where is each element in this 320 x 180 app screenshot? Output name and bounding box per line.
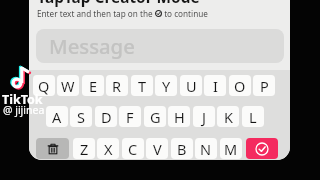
button[interactable]: L xyxy=(242,106,264,127)
staticText: E xyxy=(89,76,98,96)
staticText: L xyxy=(249,107,257,127)
staticText: H xyxy=(174,107,185,127)
staticText: Y xyxy=(162,76,171,96)
staticText: Enter text and then tap on the xyxy=(37,8,155,19)
button[interactable]: A xyxy=(46,106,68,127)
staticText: I xyxy=(213,76,218,96)
staticText: J xyxy=(202,107,206,127)
button[interactable]: V xyxy=(146,138,168,159)
staticText: W xyxy=(61,76,75,96)
button[interactable]: Q xyxy=(33,75,55,96)
button[interactable]: K xyxy=(217,106,239,127)
staticText: Z xyxy=(80,139,89,159)
button[interactable]: G xyxy=(144,106,166,127)
button[interactable]: C xyxy=(122,138,144,159)
staticText: K xyxy=(224,107,233,127)
staticText: D xyxy=(101,107,112,127)
staticText: M xyxy=(224,139,238,159)
staticText: S xyxy=(77,107,85,127)
button[interactable]: H xyxy=(168,106,190,127)
staticText: TikTok xyxy=(2,91,43,108)
button[interactable]: M xyxy=(220,138,242,159)
staticText: A xyxy=(52,107,62,127)
staticText: G xyxy=(150,107,161,127)
staticText: U xyxy=(186,76,197,96)
button[interactable]: T xyxy=(131,75,153,96)
button[interactable]: R xyxy=(106,75,128,96)
button[interactable]: W xyxy=(57,75,79,96)
button[interactable]: S xyxy=(70,106,92,127)
button[interactable]: I xyxy=(204,75,226,96)
staticText: F xyxy=(126,107,134,127)
button[interactable]: N xyxy=(195,138,217,159)
staticText: B xyxy=(177,139,187,159)
button[interactable]: U xyxy=(180,75,202,96)
button[interactable]: F xyxy=(119,106,141,127)
button[interactable]: O xyxy=(229,75,251,96)
staticText: V xyxy=(153,139,162,159)
button[interactable]: E xyxy=(82,75,104,96)
staticText: R xyxy=(112,76,122,96)
staticText: Q xyxy=(38,76,50,96)
button[interactable]: Delete xyxy=(36,138,69,159)
button[interactable]: J xyxy=(193,106,215,127)
staticText: T xyxy=(138,76,147,96)
button[interactable]: X xyxy=(97,138,119,159)
button[interactable]: Confirm xyxy=(246,138,278,159)
staticText: Message xyxy=(49,32,135,60)
staticText: TapTap Creator Mode xyxy=(29,0,210,8)
button[interactable]: Message xyxy=(36,29,284,63)
staticText: @ jijinea xyxy=(3,103,45,117)
button[interactable]: Y xyxy=(155,75,177,96)
staticText: P xyxy=(260,76,269,96)
staticText: C xyxy=(128,139,138,159)
button[interactable]: Z xyxy=(73,138,95,159)
staticText: O xyxy=(234,76,246,96)
staticText: N xyxy=(200,139,212,159)
button[interactable]: P xyxy=(253,75,275,96)
button[interactable]: D xyxy=(95,106,117,127)
staticText: to continue xyxy=(162,8,208,19)
button[interactable]: B xyxy=(171,138,193,159)
staticText: X xyxy=(104,139,113,159)
